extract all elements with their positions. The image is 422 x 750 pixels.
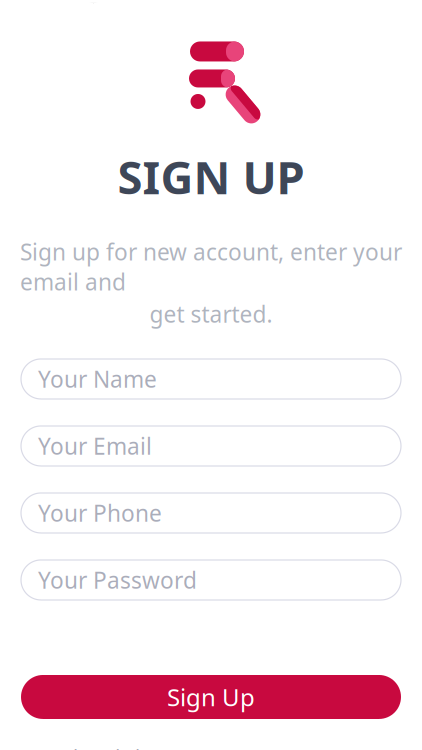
staticText: SIGN UP bbox=[117, 146, 304, 207]
staticText: Sign Up bbox=[167, 681, 255, 713]
button[interactable]: Sign Up bbox=[21, 675, 401, 719]
button[interactable]: Your Phone bbox=[21, 493, 401, 533]
staticText: Already have an account? bbox=[60, 743, 295, 750]
button[interactable]: Your Password bbox=[21, 560, 401, 600]
staticText: Your Email bbox=[38, 431, 152, 461]
staticText: Your Phone bbox=[38, 498, 162, 528]
button[interactable]: Your Name bbox=[21, 359, 401, 399]
staticText: get started. bbox=[149, 299, 272, 329]
button[interactable]: Already have an account? bbox=[60, 743, 362, 750]
staticText: Sign up for new account, enter your emai… bbox=[20, 237, 402, 297]
staticText: Your Name bbox=[38, 364, 157, 394]
button[interactable]: Your Email bbox=[21, 426, 401, 466]
staticText: Your Password bbox=[38, 565, 197, 595]
